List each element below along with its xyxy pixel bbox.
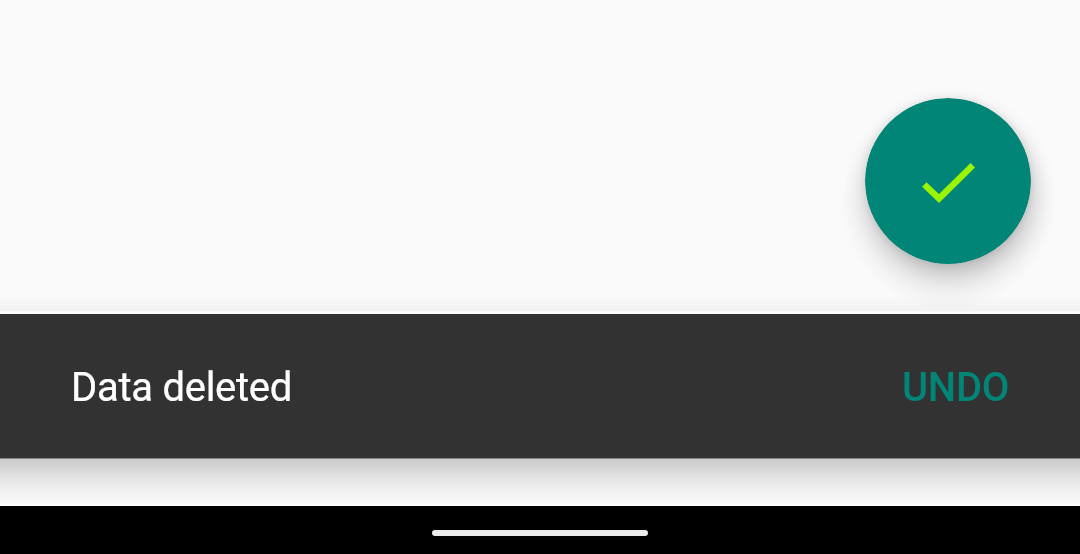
button[interactable]: Home gesture handle bbox=[432, 530, 648, 536]
staticText: Data deleted bbox=[71, 364, 293, 411]
staticText: UNDO bbox=[902, 364, 1010, 411]
button[interactable]: Confirm bbox=[865, 98, 1031, 264]
button[interactable]: UNDO bbox=[878, 352, 1034, 423]
button[interactable]: Data deleted bbox=[0, 314, 1080, 458]
